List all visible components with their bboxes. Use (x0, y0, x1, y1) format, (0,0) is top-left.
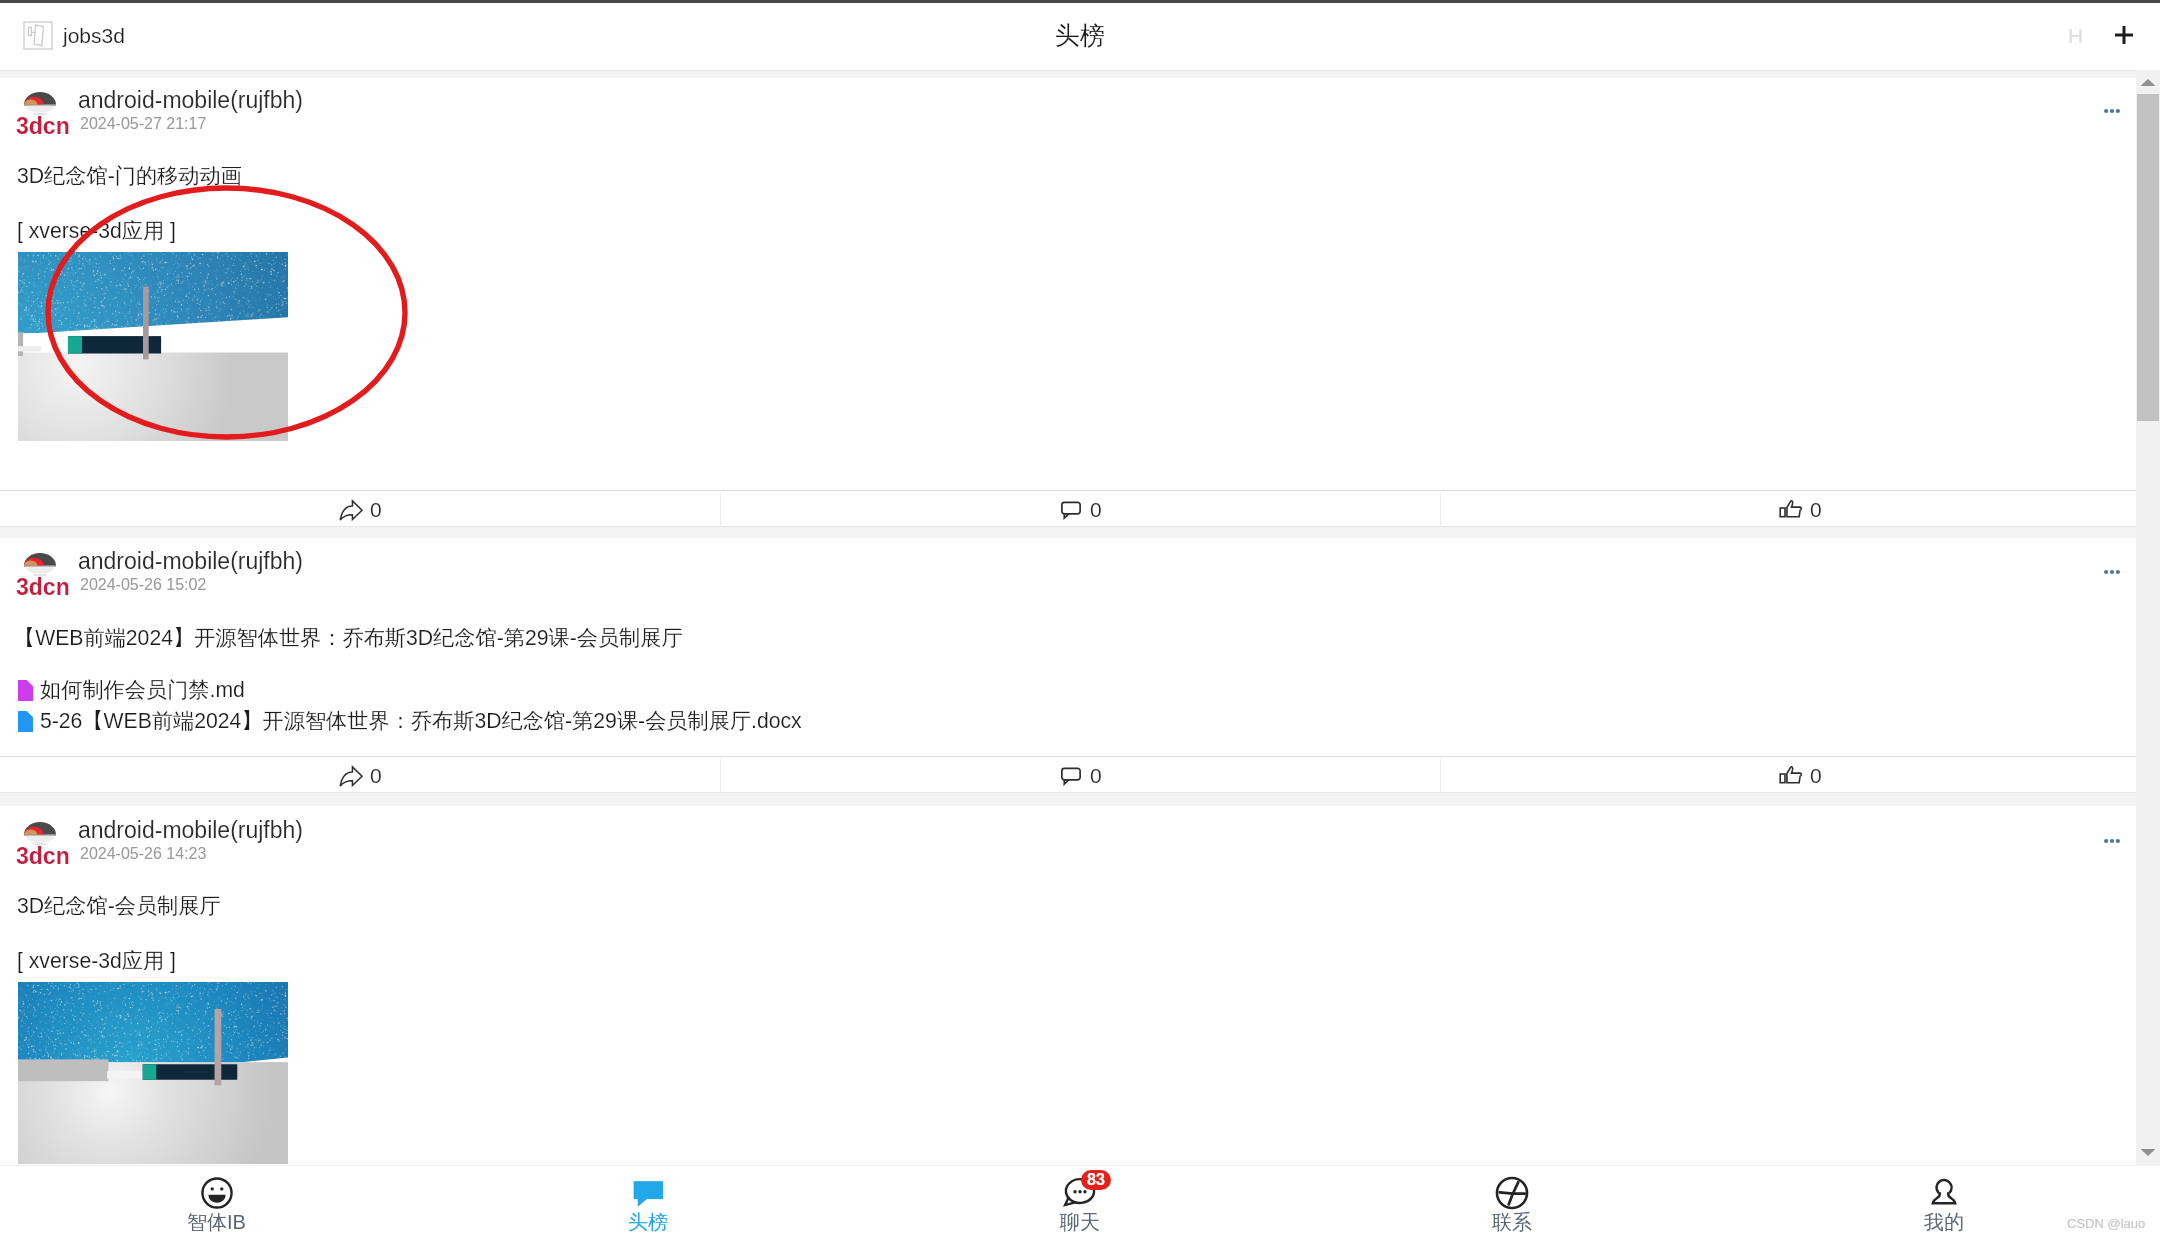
button[interactable]: jobs3d (18, 20, 125, 51)
button[interactable]: Add (2104, 15, 2144, 55)
staticText: 3dcn (16, 574, 70, 600)
button[interactable]: 5-26【WEB前端2024】开源智体世界：乔布斯3D纪念馆-第29课-会员制展… (18, 708, 802, 735)
staticText: 聊天 (1060, 1210, 1100, 1235)
staticText: android-mobile(rujfbh) (78, 87, 303, 113)
staticText: 2024-05-26 14:23 (80, 845, 207, 863)
button[interactable]: 83 (864, 1166, 1296, 1239)
button[interactable]: 我的 (1728, 1166, 2160, 1239)
button[interactable]: 联系 (1296, 1166, 1728, 1239)
button[interactable]: More options (2096, 99, 2128, 123)
staticText: 83 (1087, 1171, 1105, 1189)
staticText: 头榜 (628, 1210, 668, 1235)
staticText: 如何制作会员门禁.md (40, 677, 245, 704)
staticText: 5-26【WEB前端2024】开源智体世界：乔布斯3D纪念馆-第29课-会员制展… (40, 708, 802, 735)
button[interactable]: Post image (18, 982, 288, 1164)
staticText: 3dcn (16, 843, 70, 869)
button[interactable]: Share (0, 757, 720, 792)
staticText: 我的 (1924, 1210, 1964, 1235)
staticText: 头榜 (1055, 20, 1105, 51)
button[interactable]: Comment (721, 491, 1440, 526)
button[interactable]: More options (2096, 560, 2128, 584)
staticText: jobs3d (63, 24, 125, 47)
staticText: 0 (1810, 764, 1822, 787)
button[interactable]: 如何制作会员门禁.md (18, 677, 245, 704)
staticText: 【WEB前端2024】开源智体世界：乔布斯3D纪念馆-第29课-会员制展厅 (14, 625, 683, 652)
staticText: android-mobile(rujfbh) (78, 548, 303, 574)
staticText: 0 (370, 764, 382, 787)
staticText: 3dcn (16, 113, 70, 139)
button[interactable]: 头榜 (432, 1166, 864, 1239)
staticText: CSDN @lauo (2067, 1216, 2146, 1231)
button[interactable]: 智体IB (0, 1166, 432, 1239)
staticText: 3D纪念馆-会员制展厅 (17, 893, 221, 920)
staticText: H (2068, 24, 2084, 47)
staticText: 0 (1090, 764, 1102, 787)
staticText: android-mobile(rujfbh) (78, 817, 303, 843)
button[interactable]: Comment (721, 757, 1440, 792)
button[interactable]: More options (2096, 829, 2128, 853)
button[interactable]: Post image (18, 252, 288, 441)
button[interactable]: Like (1441, 757, 2160, 792)
staticText: 联系 (1492, 1210, 1532, 1235)
staticText: 0 (370, 498, 382, 521)
staticText: [ xverse-3d应用 ] (17, 948, 176, 975)
staticText: 智体IB (187, 1210, 246, 1235)
button[interactable]: Share (0, 491, 720, 526)
staticText: 2024-05-26 15:02 (80, 576, 207, 594)
staticText: 0 (1090, 498, 1102, 521)
staticText: 2024-05-27 21:17 (80, 115, 207, 133)
button[interactable]: Like (1441, 491, 2160, 526)
staticText: [ xverse-3d应用 ] (17, 218, 176, 245)
staticText: 0 (1810, 498, 1822, 521)
button[interactable]: History (2058, 17, 2094, 53)
staticText: 3D纪念馆-门的移动动画 (17, 163, 242, 190)
